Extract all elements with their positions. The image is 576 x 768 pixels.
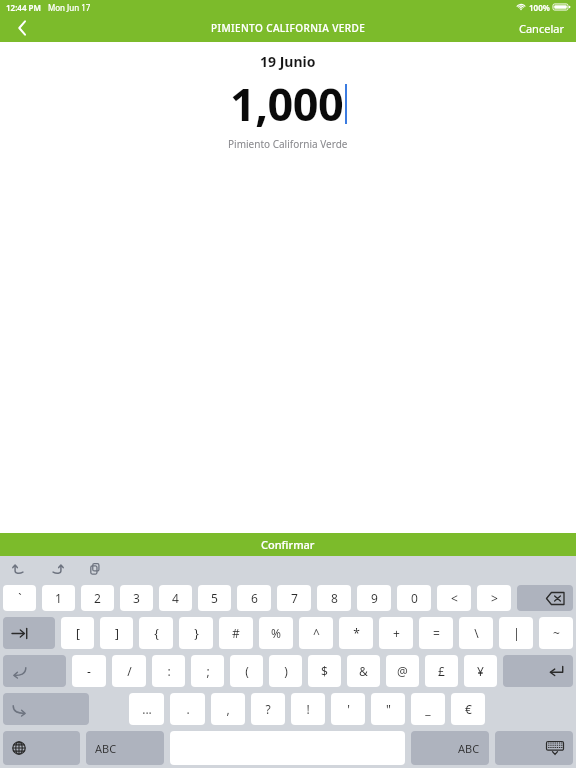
button[interactable]: ;: [191, 655, 224, 687]
staticText: +: [393, 625, 400, 641]
staticText: ABC: [458, 741, 480, 756]
button[interactable]: 9: [357, 585, 391, 611]
button[interactable]: ,: [211, 693, 245, 725]
button[interactable]: Backspace: [517, 585, 573, 611]
button[interactable]: |: [499, 617, 533, 649]
button[interactable]: 8: [317, 585, 351, 611]
staticText: Mon Jun 17: [48, 2, 91, 13]
staticText: Pimiento California Verde: [228, 137, 348, 151]
staticText: 6: [251, 590, 258, 606]
staticText: ...: [142, 701, 152, 717]
staticText: |: [513, 625, 520, 641]
staticText: Confirmar: [261, 537, 315, 552]
button[interactable]: #: [219, 617, 253, 649]
button[interactable]: ABC: [86, 731, 164, 765]
staticText: :: [167, 663, 171, 679]
button[interactable]: €: [451, 693, 485, 725]
staticText: ¥: [477, 663, 484, 679]
staticText: /: [127, 663, 132, 679]
button[interactable]: *: [339, 617, 373, 649]
button[interactable]: ~: [539, 617, 573, 649]
button[interactable]: Change keyboard: [3, 731, 80, 765]
button[interactable]: $: [308, 655, 341, 687]
staticText: 100%: [529, 2, 550, 13]
button[interactable]: 1: [42, 585, 75, 611]
button[interactable]: :: [152, 655, 185, 687]
button[interactable]: +: [379, 617, 413, 649]
button[interactable]: Shift: [3, 693, 89, 725]
staticText: 9: [371, 590, 378, 606]
button[interactable]: Redo: [46, 558, 68, 580]
button[interactable]: 4: [159, 585, 192, 611]
staticText: (: [245, 663, 249, 679]
staticText: £: [438, 663, 445, 679]
button[interactable]: Back: [0, 14, 44, 42]
staticText: 19 Junio: [260, 52, 316, 71]
button[interactable]: =: [419, 617, 453, 649]
button[interactable]: Hide keyboard: [495, 731, 573, 765]
button[interactable]: ...: [129, 693, 164, 725]
button[interactable]: @: [386, 655, 419, 687]
staticText: 7: [291, 590, 298, 606]
staticText: @: [397, 663, 408, 679]
button[interactable]: `: [3, 585, 36, 611]
staticText: ^: [313, 625, 320, 641]
button[interactable]: Undo: [8, 558, 30, 580]
button[interactable]: ): [269, 655, 302, 687]
button[interactable]: Tab: [3, 617, 55, 649]
staticText: ,: [226, 701, 230, 717]
button[interactable]: ': [331, 693, 365, 725]
button[interactable]: <: [437, 585, 471, 611]
staticText: ): [284, 663, 288, 679]
staticText: =: [433, 625, 440, 641]
button[interactable]: ": [371, 693, 405, 725]
button[interactable]: Paste: [84, 558, 106, 580]
staticText: $: [321, 663, 328, 679]
staticText: 12:44 PM: [6, 2, 41, 13]
staticText: ": [386, 701, 391, 717]
button[interactable]: /: [112, 655, 146, 687]
button[interactable]: 3: [120, 585, 153, 611]
button[interactable]: _: [411, 693, 445, 725]
button[interactable]: Shift: [3, 655, 66, 687]
staticText: 0: [411, 590, 418, 606]
button[interactable]: 6: [237, 585, 271, 611]
button[interactable]: Return: [503, 655, 573, 687]
button[interactable]: 2: [81, 585, 114, 611]
staticText: !: [306, 701, 310, 717]
button[interactable]: Confirmar: [0, 533, 576, 556]
button[interactable]: ?: [251, 693, 285, 725]
staticText: ~: [553, 625, 560, 641]
button[interactable]: ABC: [411, 731, 489, 765]
button[interactable]: \: [459, 617, 493, 649]
staticText: 1,000: [230, 73, 344, 134]
staticText: #: [232, 625, 240, 641]
button[interactable]: 7: [277, 585, 311, 611]
staticText: [: [76, 625, 80, 641]
button[interactable]: %: [259, 617, 293, 649]
button[interactable]: ^: [299, 617, 333, 649]
button[interactable]: ¥: [464, 655, 497, 687]
button[interactable]: £: [425, 655, 458, 687]
button[interactable]: .: [170, 693, 205, 725]
staticText: &: [359, 663, 368, 679]
button[interactable]: >: [477, 585, 511, 611]
button[interactable]: 5: [198, 585, 231, 611]
button[interactable]: }: [179, 617, 213, 649]
staticText: 8: [331, 590, 338, 606]
button[interactable]: !: [291, 693, 325, 725]
button[interactable]: &: [347, 655, 380, 687]
button[interactable]: ]: [100, 617, 133, 649]
button[interactable]: -: [72, 655, 106, 687]
staticText: <: [451, 590, 458, 606]
button[interactable]: Cancelar: [507, 14, 576, 42]
staticText: .: [186, 701, 190, 717]
staticText: \: [474, 625, 479, 641]
button[interactable]: 0: [397, 585, 431, 611]
button[interactable]: {: [139, 617, 173, 649]
button[interactable]: (: [230, 655, 263, 687]
button[interactable]: [: [61, 617, 94, 649]
staticText: ?: [265, 701, 271, 717]
staticText: 1: [55, 590, 62, 606]
